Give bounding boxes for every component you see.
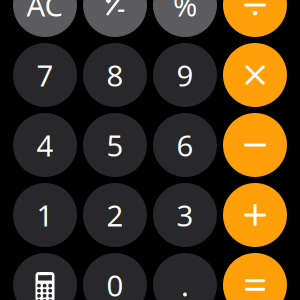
button[interactable]: 9 [153,43,217,107]
button[interactable]: 2 [83,183,147,247]
button[interactable]: Divide [223,0,287,37]
button[interactable]: Plus minus [83,0,147,37]
button[interactable]: Equals [223,253,287,300]
button[interactable]: 1 [13,183,77,247]
button[interactable]: 7 [13,43,77,107]
staticText: 9 [176,55,193,94]
staticText: . [181,265,189,300]
button[interactable]: Percent [153,0,217,37]
button[interactable]: Multiply [223,43,287,107]
staticText: 2 [106,195,123,234]
staticText: 6 [176,125,193,164]
staticText: 4 [36,125,53,164]
button[interactable]: Minus [223,113,287,177]
button[interactable]: 4 [13,113,77,177]
button[interactable]: 6 [153,113,217,177]
button[interactable]: 5 [83,113,147,177]
button[interactable]: 3 [153,183,217,247]
button[interactable]: 0 [83,253,147,300]
button[interactable]: Decimal point [153,253,217,300]
button[interactable]: Plus [223,183,287,247]
staticText: 8 [106,55,123,94]
staticText: % [173,0,197,24]
button[interactable]: All clear [13,0,77,37]
staticText: AC [26,0,63,24]
staticText: 7 [36,55,53,94]
button[interactable]: 8 [83,43,147,107]
button[interactable]: Calculator [13,253,77,300]
staticText: 0 [106,265,123,300]
staticText: 1 [36,195,53,234]
staticText: 3 [176,195,193,234]
staticText: 5 [106,125,123,164]
